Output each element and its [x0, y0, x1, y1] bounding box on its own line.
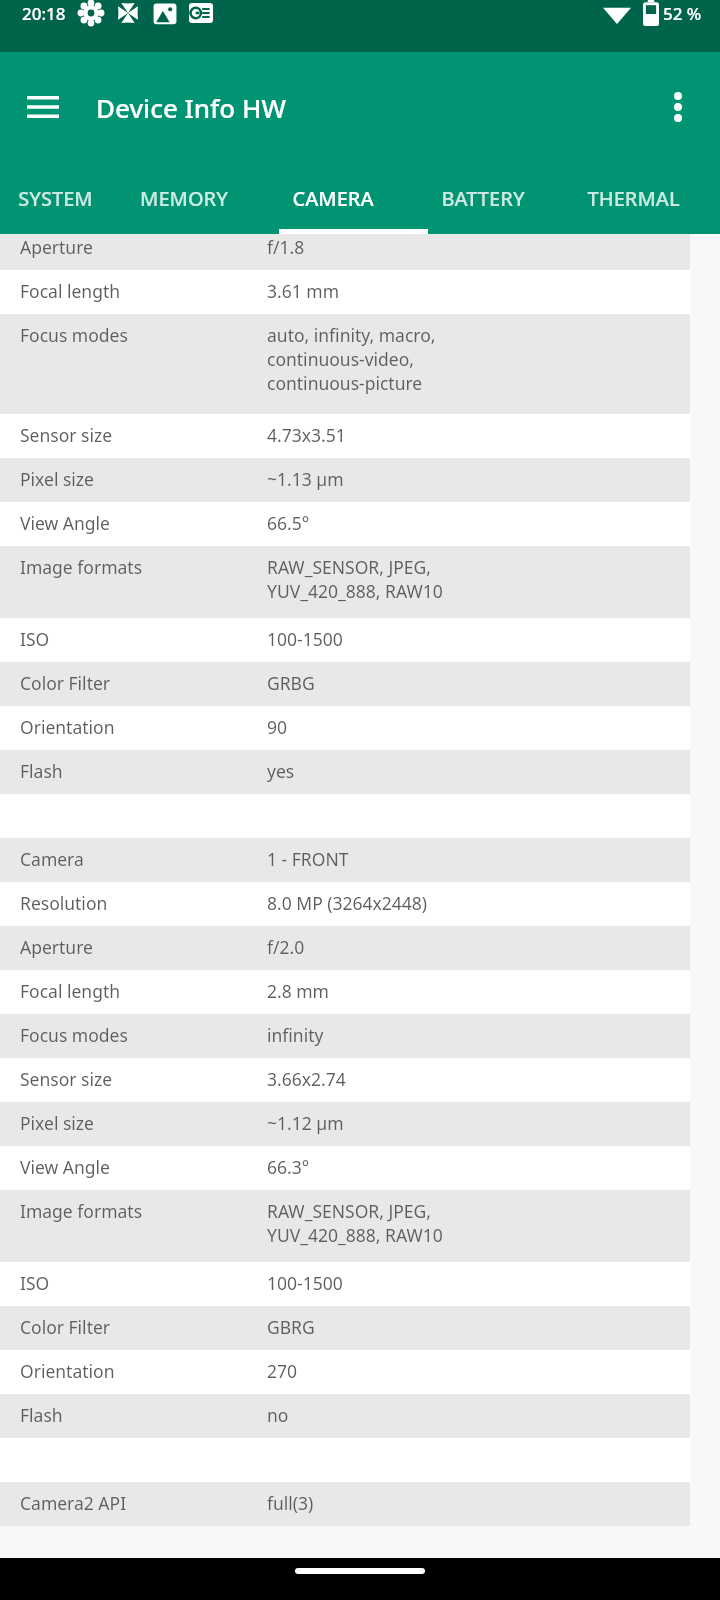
staticText: Resolution — [20, 891, 108, 915]
staticText: full(3) — [267, 1491, 314, 1515]
button[interactable]: Focus modes — [0, 1014, 690, 1058]
button[interactable]: Flash — [0, 750, 690, 794]
staticText: continuous-video, — [267, 347, 414, 371]
staticText: ~1.12 µm — [267, 1111, 344, 1135]
staticText: f/2.0 — [267, 935, 305, 959]
button[interactable]: Color Filter — [0, 1306, 690, 1350]
staticText: Aperture — [20, 935, 93, 959]
staticText: 52 % — [663, 2, 702, 25]
button[interactable]: ISO — [0, 618, 690, 662]
button[interactable]: Pixel size — [0, 458, 690, 502]
button[interactable]: Image formats — [0, 546, 690, 618]
staticText: Flash — [20, 759, 63, 783]
staticText: ~1.13 µm — [267, 467, 344, 491]
staticText: f/1.8 — [267, 235, 305, 259]
staticText: Pixel size — [20, 1111, 94, 1135]
staticText: 3.61 mm — [267, 279, 339, 303]
staticText: 66.3° — [267, 1155, 310, 1179]
staticText: auto, infinity, macro, — [267, 323, 436, 347]
button[interactable]: View Angle — [0, 502, 690, 546]
staticText: View Angle — [20, 1155, 110, 1179]
staticText: Pixel size — [20, 467, 94, 491]
staticText: YUV_420_888, RAW10 — [267, 1223, 443, 1247]
button[interactable]: SYSTEM — [0, 162, 110, 234]
button[interactable]: More options — [650, 79, 706, 135]
button[interactable]: ISO — [0, 1262, 690, 1306]
staticText: 3.66x2.74 — [267, 1067, 346, 1091]
staticText: Flash — [20, 1403, 63, 1427]
staticText: 90 — [267, 715, 288, 739]
button[interactable]: BATTERY — [408, 162, 558, 234]
button[interactable]: Sensor size — [0, 1058, 690, 1102]
staticText: CAMERA — [292, 185, 374, 212]
staticText: Orientation — [20, 1359, 115, 1383]
button[interactable]: Flash — [0, 1394, 690, 1438]
staticText: Image formats — [20, 555, 143, 579]
button[interactable]: Sensor size — [0, 414, 690, 458]
button[interactable]: Focus modes — [0, 314, 690, 414]
staticText: BATTERY — [441, 185, 525, 212]
staticText: 100-1500 — [267, 1271, 343, 1295]
staticText: GBRG — [267, 1315, 315, 1339]
staticText: Sensor size — [20, 423, 113, 447]
button[interactable]: Orientation — [0, 1350, 690, 1394]
staticText: Color Filter — [20, 1315, 111, 1339]
staticText: 8.0 MP (3264x2448) — [267, 891, 428, 915]
staticText: Camera2 API — [20, 1491, 127, 1515]
staticText: 66.5° — [267, 511, 310, 535]
staticText: yes — [267, 759, 295, 783]
staticText: Image formats — [20, 1199, 143, 1223]
staticText: Focus modes — [20, 1023, 128, 1047]
button[interactable]: THERMAL — [558, 162, 708, 234]
button[interactable]: CAMERA — [258, 162, 408, 234]
button[interactable]: Pixel size — [0, 1102, 690, 1146]
staticText: SYSTEM — [18, 185, 93, 212]
button[interactable]: Open navigation drawer — [13, 77, 73, 137]
button[interactable]: View Angle — [0, 1146, 690, 1190]
button[interactable]: Image formats — [0, 1190, 690, 1262]
staticText: continuous-picture — [267, 371, 423, 395]
staticText: RAW_SENSOR, JPEG, — [267, 1199, 431, 1223]
staticText: MEMORY — [140, 185, 228, 212]
staticText: ISO — [20, 1271, 50, 1295]
staticText: RAW_SENSOR, JPEG, — [267, 555, 431, 579]
staticText: Orientation — [20, 715, 115, 739]
staticText: infinity — [267, 1023, 324, 1047]
staticText: GRBG — [267, 671, 315, 695]
staticText: 20:18 — [22, 2, 66, 25]
button[interactable]: Color Filter — [0, 662, 690, 706]
staticText: 100-1500 — [267, 627, 343, 651]
staticText: Focal length — [20, 979, 121, 1003]
button[interactable]: MEMORY — [110, 162, 258, 234]
staticText: Sensor size — [20, 1067, 113, 1091]
button[interactable]: Aperture — [0, 926, 690, 970]
staticText: Focus modes — [20, 323, 128, 347]
button[interactable]: Resolution — [0, 882, 690, 926]
staticText: ISO — [20, 627, 50, 651]
staticText: 2.8 mm — [267, 979, 329, 1003]
button[interactable]: Aperture — [0, 234, 690, 270]
staticText: Camera — [20, 847, 84, 871]
staticText: 4.73x3.51 — [267, 423, 346, 447]
button[interactable]: Orientation — [0, 706, 690, 750]
staticText: Color Filter — [20, 671, 111, 695]
staticText: THERMAL — [587, 185, 680, 212]
staticText: Focal length — [20, 279, 121, 303]
button[interactable]: Focal length — [0, 270, 690, 314]
staticText: no — [267, 1403, 289, 1427]
staticText: YUV_420_888, RAW10 — [267, 579, 443, 603]
button[interactable]: Focal length — [0, 970, 690, 1014]
staticText: 1 - FRONT — [267, 847, 349, 871]
staticText: Device Info HW — [96, 90, 286, 125]
staticText: Aperture — [20, 235, 93, 259]
staticText: View Angle — [20, 511, 110, 535]
button[interactable]: Camera2 API — [0, 1482, 690, 1526]
staticText: 270 — [267, 1359, 298, 1383]
button[interactable]: Camera — [0, 838, 690, 882]
